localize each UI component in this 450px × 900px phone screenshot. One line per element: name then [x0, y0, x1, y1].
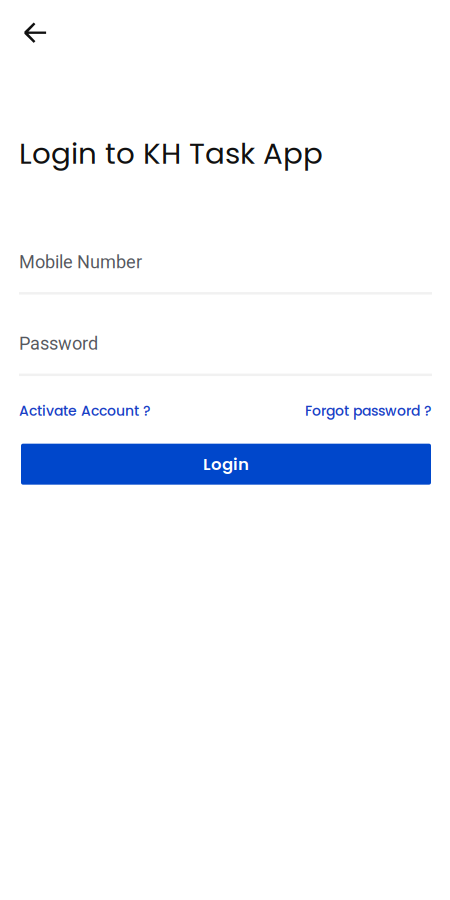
- staticText: Mobile Number: [19, 251, 142, 273]
- button[interactable]: Activate Account ?: [19, 401, 151, 421]
- button[interactable]: Password: [19, 336, 432, 376]
- staticText: Activate Account ?: [19, 401, 151, 421]
- button[interactable]: Mobile Number: [19, 254, 432, 295]
- button[interactable]: Back: [13, 11, 57, 55]
- button[interactable]: Forgot password ?: [305, 401, 432, 421]
- staticText: Login to KH Task App: [19, 133, 323, 174]
- staticText: Password: [19, 333, 98, 354]
- staticText: Login: [203, 453, 249, 476]
- staticText: Forgot password ?: [305, 401, 432, 421]
- button[interactable]: Login: [21, 444, 431, 485]
